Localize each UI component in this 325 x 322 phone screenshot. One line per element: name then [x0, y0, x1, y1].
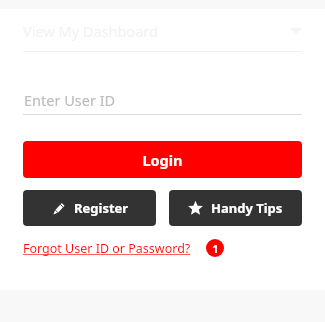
- button[interactable]: Login: [23, 141, 302, 178]
- staticText: 1: [212, 241, 219, 256]
- button[interactable]: Register: [23, 190, 156, 226]
- button[interactable]: Enter User ID: [0, 85, 325, 115]
- staticText: Forgot User ID or Password?: [23, 240, 191, 257]
- staticText: Register: [74, 199, 129, 217]
- staticText: Enter User ID: [24, 90, 116, 110]
- button[interactable]: 1 notification: [206, 239, 224, 257]
- staticText: View My Dashboard: [23, 21, 158, 41]
- button[interactable]: Forgot User ID or Password?: [23, 238, 191, 259]
- button[interactable]: View My Dashboard: [0, 9, 325, 52]
- staticText: Handy Tips: [211, 199, 283, 217]
- staticText: Login: [142, 150, 183, 170]
- button[interactable]: Handy Tips: [169, 190, 302, 226]
